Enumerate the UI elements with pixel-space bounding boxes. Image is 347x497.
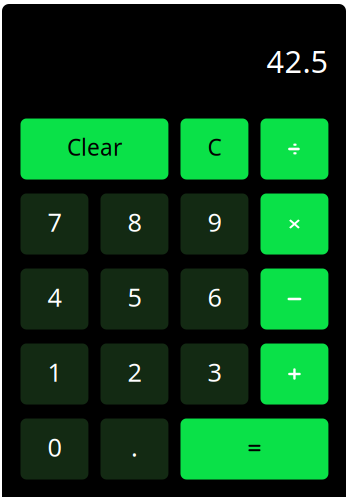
staticText: . [131,430,138,464]
button[interactable]: 4 [20,268,88,329]
button[interactable]: 6 [180,268,248,329]
button[interactable]: . [100,418,168,479]
staticText: 3 [207,355,221,389]
button[interactable]: 3 [180,343,248,404]
button[interactable]: 9 [180,193,248,254]
staticText: Clear [67,132,122,162]
button[interactable]: 5 [100,268,168,329]
button[interactable]: Equals [180,418,328,479]
button[interactable]: Clear [20,118,168,179]
button[interactable]: Divide [260,118,328,179]
staticText: 8 [127,205,141,239]
button[interactable]: 1 [20,343,88,404]
staticText: 6 [207,280,221,314]
staticText: 2 [127,355,141,389]
button[interactable]: C [180,118,248,179]
staticText: 4 [47,280,61,314]
button[interactable]: Multiply [260,193,328,254]
staticText: 5 [127,280,141,314]
staticText: 7 [47,205,61,239]
staticText: 1 [47,355,61,389]
staticText: C [207,132,221,162]
button[interactable]: 7 [20,193,88,254]
button[interactable]: Add [260,343,328,404]
staticText: 9 [207,205,221,239]
staticText: 42.5 [266,41,328,81]
button[interactable]: 0 [20,418,88,479]
button[interactable]: 2 [100,343,168,404]
button[interactable]: 8 [100,193,168,254]
staticText: 0 [47,430,61,464]
button[interactable]: Subtract [260,268,328,329]
